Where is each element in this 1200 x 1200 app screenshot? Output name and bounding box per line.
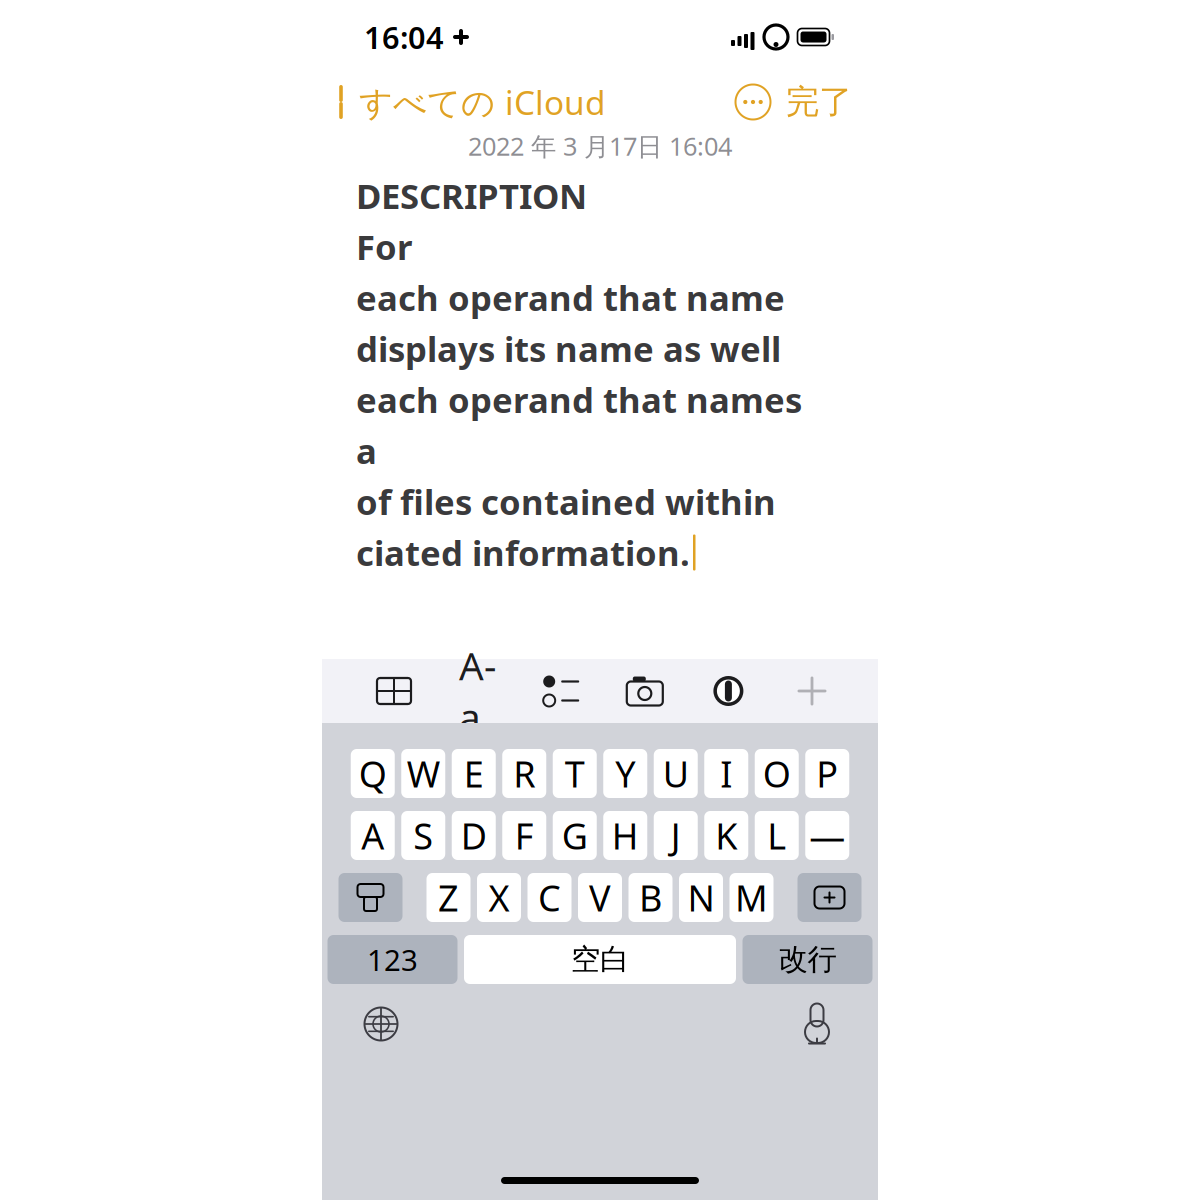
staticText: N: [687, 874, 714, 921]
button[interactable]: K: [704, 811, 748, 860]
staticText: E: [464, 750, 484, 797]
staticText: V: [589, 874, 611, 921]
staticText: A: [361, 812, 384, 859]
staticText: 123: [367, 940, 418, 979]
staticText: H: [612, 812, 639, 859]
button[interactable]: P: [805, 749, 849, 798]
staticText: Q: [359, 750, 387, 797]
button[interactable]: G: [553, 811, 597, 860]
button[interactable]: —: [805, 811, 849, 860]
staticText: ciated information.: [356, 529, 690, 575]
staticText: G: [562, 812, 588, 859]
button[interactable]: マークアップ: [708, 675, 748, 707]
button[interactable]: 空白: [464, 935, 736, 984]
staticText: W: [407, 750, 440, 797]
button[interactable]: D: [452, 811, 496, 860]
button[interactable]: 改行: [742, 935, 872, 984]
staticText: O: [763, 750, 791, 797]
button[interactable]: S: [401, 811, 445, 860]
button[interactable]: M: [729, 873, 773, 922]
button[interactable]: チェックリスト: [541, 675, 581, 707]
staticText: displays its name as well: [356, 325, 781, 371]
staticText: S: [413, 812, 433, 859]
staticText: K: [715, 812, 737, 859]
button[interactable]: 削除: [797, 873, 861, 922]
button[interactable]: Q: [351, 749, 395, 798]
button[interactable]: W: [401, 749, 445, 798]
button[interactable]: R: [502, 749, 546, 798]
staticText: すべての iCloud: [359, 80, 606, 124]
staticText: I: [720, 750, 732, 797]
staticText: R: [513, 750, 535, 797]
button[interactable]: キーボードを閉じる: [792, 675, 832, 707]
button[interactable]: 表: [374, 675, 414, 707]
staticText: L: [767, 812, 786, 859]
button[interactable]: すべての iCloud: [322, 75, 606, 129]
button[interactable]: N: [679, 873, 723, 922]
button[interactable]: T: [553, 749, 597, 798]
button[interactable]: 次のキーボード: [360, 1003, 402, 1045]
button[interactable]: Y: [603, 749, 647, 798]
button[interactable]: シフト: [338, 873, 402, 922]
button[interactable]: L: [755, 811, 799, 860]
button[interactable]: J: [654, 811, 698, 860]
staticText: D: [461, 812, 487, 859]
button[interactable]: カメラ: [625, 675, 665, 707]
staticText: a: [356, 427, 377, 473]
button[interactable]: F: [502, 811, 546, 860]
button[interactable]: 完了: [776, 75, 862, 128]
staticText: U: [663, 750, 689, 797]
staticText: F: [515, 812, 534, 859]
staticText: 空白: [571, 941, 629, 977]
staticText: each operand that name: [356, 274, 785, 320]
staticText: 改行: [778, 941, 836, 977]
staticText: T: [565, 750, 585, 797]
staticText: DESCRIPTION: [356, 172, 587, 218]
staticText: B: [639, 874, 662, 921]
staticText: —: [809, 812, 845, 859]
button[interactable]: V: [578, 873, 622, 922]
staticText: 16:04: [364, 17, 444, 57]
staticText: 完了: [786, 81, 852, 122]
staticText: For: [356, 223, 412, 269]
button[interactable]: B: [628, 873, 672, 922]
staticText: Y: [615, 750, 635, 797]
staticText: Z: [438, 874, 459, 921]
staticText: X: [488, 874, 509, 921]
staticText: each operand that names: [356, 376, 802, 422]
button[interactable]: X: [477, 873, 521, 922]
staticText: C: [538, 874, 561, 921]
button[interactable]: E: [452, 749, 496, 798]
button[interactable]: H: [603, 811, 647, 860]
button[interactable]: 123: [327, 935, 457, 984]
button[interactable]: 書式: [458, 675, 498, 707]
staticText: P: [816, 750, 838, 797]
button[interactable]: U: [654, 749, 698, 798]
staticText: M: [735, 874, 768, 921]
button[interactable]: O: [755, 749, 799, 798]
button[interactable]: その他: [730, 79, 776, 125]
button[interactable]: C: [527, 873, 571, 922]
staticText: Aa: [459, 640, 496, 742]
button[interactable]: Z: [426, 873, 470, 922]
button[interactable]: A: [351, 811, 395, 860]
staticText: J: [671, 812, 681, 859]
button[interactable]: 音声入力: [796, 1002, 838, 1046]
staticText: of files contained within: [356, 478, 776, 524]
staticText: 2022 年 3 月17日 16:04: [468, 129, 732, 163]
button[interactable]: I: [704, 749, 748, 798]
